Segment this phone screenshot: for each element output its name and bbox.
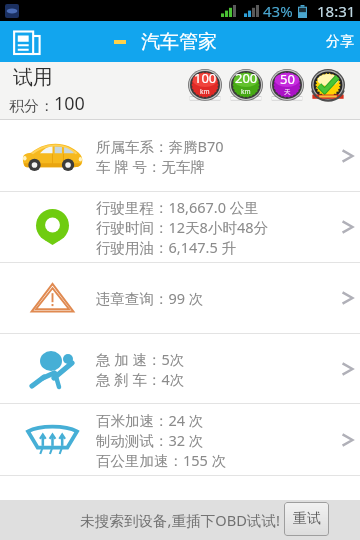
button[interactable]: 违章查询：99 次 <box>0 263 360 333</box>
staticText: 急 刹 车：4次 <box>96 369 185 389</box>
staticText: 百米加速：24 次 <box>96 410 204 430</box>
staticText: 汽车管家 <box>141 30 217 54</box>
button[interactable]: 重试 <box>284 502 329 536</box>
staticText: 行驶里程：18,667.0 公里 <box>96 197 259 217</box>
staticText: 行驶时间：12天8小时48分 <box>96 217 268 237</box>
staticText: 100 <box>54 91 85 116</box>
button[interactable]: 急 加 速：5次 <box>0 334 360 403</box>
staticText: 积分： <box>9 97 54 116</box>
staticText: 行驶用油：6,147.5 升 <box>96 237 237 257</box>
button[interactable]: 所属车系：奔腾B70 <box>0 120 360 191</box>
staticText: 未搜索到设备,重插下OBD试试! <box>80 510 280 530</box>
staticText: 试用 <box>13 65 53 90</box>
staticText: km <box>241 87 251 96</box>
staticText: 43% <box>263 1 293 21</box>
button[interactable]: 分享 <box>314 21 360 62</box>
staticText: km <box>200 87 210 96</box>
staticText: 所属车系：奔腾B70 <box>96 136 224 156</box>
staticText: 急 加 速：5次 <box>96 349 185 369</box>
staticText: 分享 <box>326 33 354 51</box>
staticText: 50 <box>280 70 295 88</box>
button[interactable]: 行驶里程：18,667.0 公里 <box>0 192 360 262</box>
staticText: 制动测试：32 次 <box>96 430 204 450</box>
staticText: 重试 <box>293 510 321 528</box>
staticText: 100 <box>194 69 217 87</box>
staticText: 百公里加速：155 次 <box>96 450 227 470</box>
button[interactable]: Menu <box>9 24 45 60</box>
staticText: 200 <box>235 69 258 87</box>
staticText: 车 牌 号：无车牌 <box>96 156 206 176</box>
staticText: 18:31 <box>317 1 356 21</box>
staticText: 违章查询：99 次 <box>96 288 204 308</box>
staticText: 天 <box>284 88 291 96</box>
button[interactable]: 百米加速：24 次 <box>0 404 360 475</box>
